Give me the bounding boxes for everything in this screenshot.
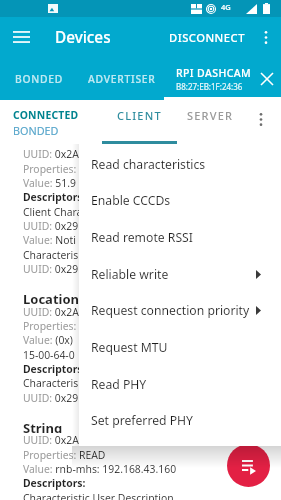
staticText: String [23,419,63,433]
staticText: Properties: READ [23,448,106,462]
staticText: UUID: 0x29 [23,219,79,233]
button[interactable]: CLIENT [102,100,176,144]
staticText: Devices [55,27,111,48]
staticText: Characteristic User Description [23,491,174,500]
staticText: Descriptors: [23,476,86,490]
staticText: Properties: [23,319,77,333]
staticText: B8:27:EB:1F:24:36 [176,81,243,92]
button[interactable]: Send command [227,444,270,487]
button[interactable]: Set preferred PHY [79,402,281,438]
staticText: UUID: 0x2A [23,147,79,161]
staticText: Read PHY [91,376,147,393]
staticText: Descriptors [23,190,83,204]
staticText: Properties: [23,162,77,176]
staticText: BONDED [15,72,64,86]
staticText: RPI DASHCAM [176,66,252,80]
staticText: Characteris [23,376,79,390]
button[interactable]: ADVERTISER [79,57,164,100]
button[interactable]: Request connection priority [79,292,281,328]
staticText: Read remote RSSI [91,229,193,246]
button[interactable]: Enable CCCDs [79,182,281,218]
button[interactable]: Request MTU [79,329,281,365]
staticText: Value: 51.9 [23,176,76,190]
staticText: 4G [221,2,231,12]
staticText: SERVER [187,108,234,123]
staticText: Set preferred PHY [91,412,194,429]
staticText: CONNECTED [13,108,79,122]
button[interactable]: Read remote RSSI [79,219,281,255]
staticText: DISCONNECT [169,30,245,45]
button[interactable]: BONDED [0,57,79,100]
staticText: Descriptors [23,362,83,376]
button[interactable]: Close device [256,68,277,89]
button[interactable]: Navigation menu [0,17,43,57]
staticText: Value: Noti [23,233,76,247]
staticText: Read characteristics [91,156,206,173]
button[interactable]: More options [251,17,281,57]
staticText: ADVERTISER [88,72,156,86]
staticText: Reliable write [91,266,169,283]
staticText: BONDED [13,123,59,138]
button[interactable]: SERVER [176,100,244,144]
staticText: Value: (0x) [23,333,73,347]
staticText: Request MTU [91,339,168,356]
staticText: UUID: 0x2A [23,305,79,319]
staticText: Location a [23,290,91,304]
staticText: Enable CCCDs [91,192,171,209]
button[interactable]: Read PHY [79,366,281,402]
button[interactable]: DISCONNECT [163,17,251,57]
staticText: Client Chara [23,205,83,219]
staticText: UUID: 0x29 [23,262,79,276]
button[interactable]: More options [248,107,274,131]
staticText: Value: rnb-mhs: 192.168.43.160 [23,462,177,476]
staticText: 15-00-64-0 [23,348,75,362]
staticText: UUID: 0x29 [23,391,79,405]
button[interactable]: Reliable write [79,256,281,292]
staticText: Request connection priority [91,302,250,319]
staticText: Characteris [23,248,79,262]
staticText: UUID: 0x2A [23,433,79,447]
button[interactable]: Read characteristics [79,146,281,182]
staticText: CLIENT [117,108,162,123]
button[interactable]: RPI DASHCAM [164,57,281,100]
